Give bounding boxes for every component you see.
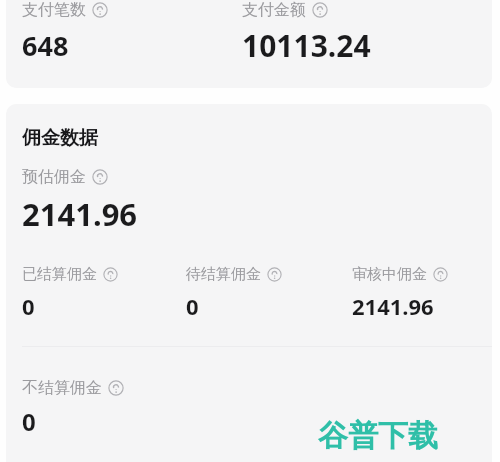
button[interactable]: Help (267, 267, 282, 282)
button[interactable]: 预估佣金 (22, 167, 138, 235)
staticText: 审核中佣金 (352, 265, 427, 284)
staticText: 支付笔数 (22, 0, 86, 20)
staticText: 预估佣金 (22, 167, 86, 187)
button[interactable]: 支付笔数 (22, 0, 108, 64)
staticText: 0 (22, 291, 35, 321)
button[interactable]: 不结算佣金 (22, 378, 124, 438)
button[interactable]: 审核中佣金 (352, 265, 448, 321)
staticText: 0 (186, 291, 199, 321)
staticText: 0 (22, 405, 36, 438)
staticText: 648 (22, 27, 69, 64)
button[interactable]: Help (108, 380, 124, 396)
button[interactable]: Help (433, 267, 448, 282)
staticText: 不结算佣金 (22, 378, 102, 398)
staticText: 已结算佣金 (22, 265, 97, 284)
staticText: 支付金额 (242, 0, 306, 20)
staticText: 2141.96 (352, 291, 434, 321)
staticText: 待结算佣金 (186, 265, 261, 284)
button[interactable]: Help (312, 2, 328, 18)
staticText: 谷普下载 (318, 417, 438, 455)
staticText: 2141.96 (22, 193, 138, 235)
button[interactable]: Help (92, 169, 108, 185)
button[interactable]: 支付金额 (242, 0, 371, 66)
staticText: 10113.24 (242, 25, 371, 66)
button[interactable]: 已结算佣金 (22, 265, 186, 321)
staticText: 佣金数据 (22, 126, 98, 150)
button[interactable]: Help (103, 267, 118, 282)
button[interactable]: Help (92, 2, 108, 18)
button[interactable]: 待结算佣金 (186, 265, 352, 321)
